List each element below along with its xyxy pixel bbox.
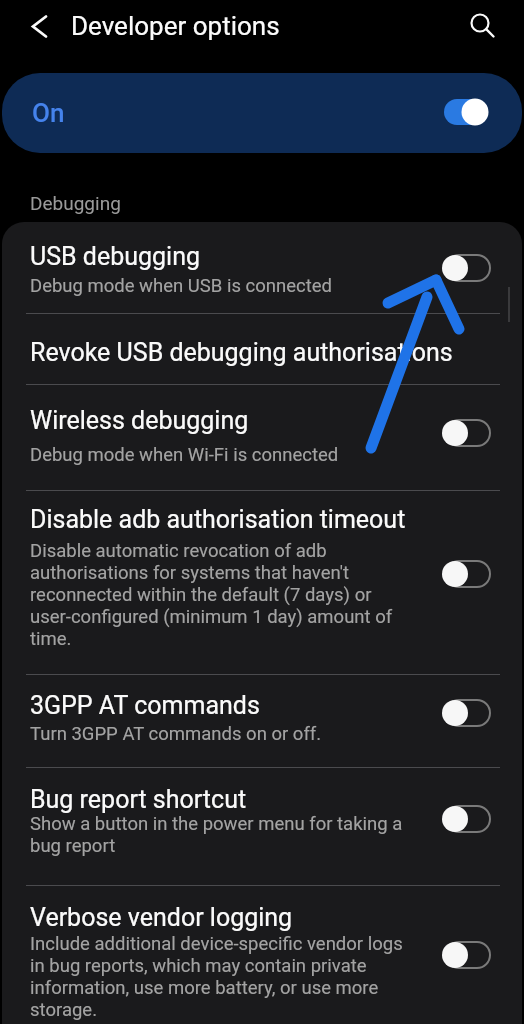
button[interactable]: [2, 674, 522, 767]
staticText: USB debugging: [30, 242, 201, 271]
staticText: Show a button in the power menu for taki…: [30, 813, 403, 857]
staticText: Developer options: [71, 11, 280, 41]
staticText: On: [32, 98, 65, 128]
button[interactable]: [20, 8, 60, 48]
staticText: Verbose vendor logging: [30, 903, 293, 932]
button[interactable]: [2, 885, 522, 1024]
staticText: Include additional device-specific vendo…: [30, 933, 403, 1021]
staticText: Disable automatic revocation of adb auth…: [30, 540, 393, 650]
button[interactable]: [2, 222, 522, 313]
button[interactable]: [2, 490, 522, 674]
button[interactable]: [2, 384, 522, 490]
button[interactable]: On: [2, 73, 522, 153]
staticText: Bug report shortcut: [30, 785, 247, 814]
staticText: Disable adb authorisation timeout: [30, 505, 406, 534]
staticText: Debug mode when Wi-Fi is connected: [30, 444, 339, 466]
staticText: Revoke USB debugging authorisations: [30, 338, 453, 367]
staticText: Turn 3GPP AT commands on or off.: [30, 723, 322, 745]
staticText: Debug mode when USB is connected: [30, 275, 333, 297]
staticText: Debugging: [30, 192, 121, 214]
button[interactable]: [2, 767, 522, 885]
staticText: 3GPP AT commands: [30, 691, 260, 720]
button[interactable]: [460, 3, 500, 43]
button[interactable]: [2, 313, 522, 384]
staticText: Wireless debugging: [30, 406, 249, 435]
